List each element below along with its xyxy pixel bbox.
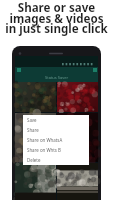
staticText: Status Saver: [45, 75, 69, 80]
button[interactable]: [15, 113, 56, 162]
staticText: Save: [27, 117, 37, 123]
staticText: Share on WhatsA: [27, 137, 63, 143]
button[interactable]: Share: [23, 125, 89, 135]
staticText: Share: [27, 127, 39, 133]
staticText: Share or save images & videos in just si…: [0, 0, 113, 36]
button[interactable]: Delete: [23, 155, 89, 165]
staticText: Share on Whts B: [27, 147, 61, 153]
button[interactable]: Save: [23, 115, 89, 125]
button[interactable]: [15, 163, 56, 200]
button[interactable]: [57, 113, 98, 162]
button[interactable]: [57, 82, 98, 112]
staticText: Delete: [27, 157, 41, 163]
button[interactable]: Share on Whts B: [23, 145, 89, 155]
button[interactable]: [15, 82, 56, 112]
button[interactable]: Share on WhatsA: [23, 135, 89, 145]
button[interactable]: [57, 163, 98, 200]
